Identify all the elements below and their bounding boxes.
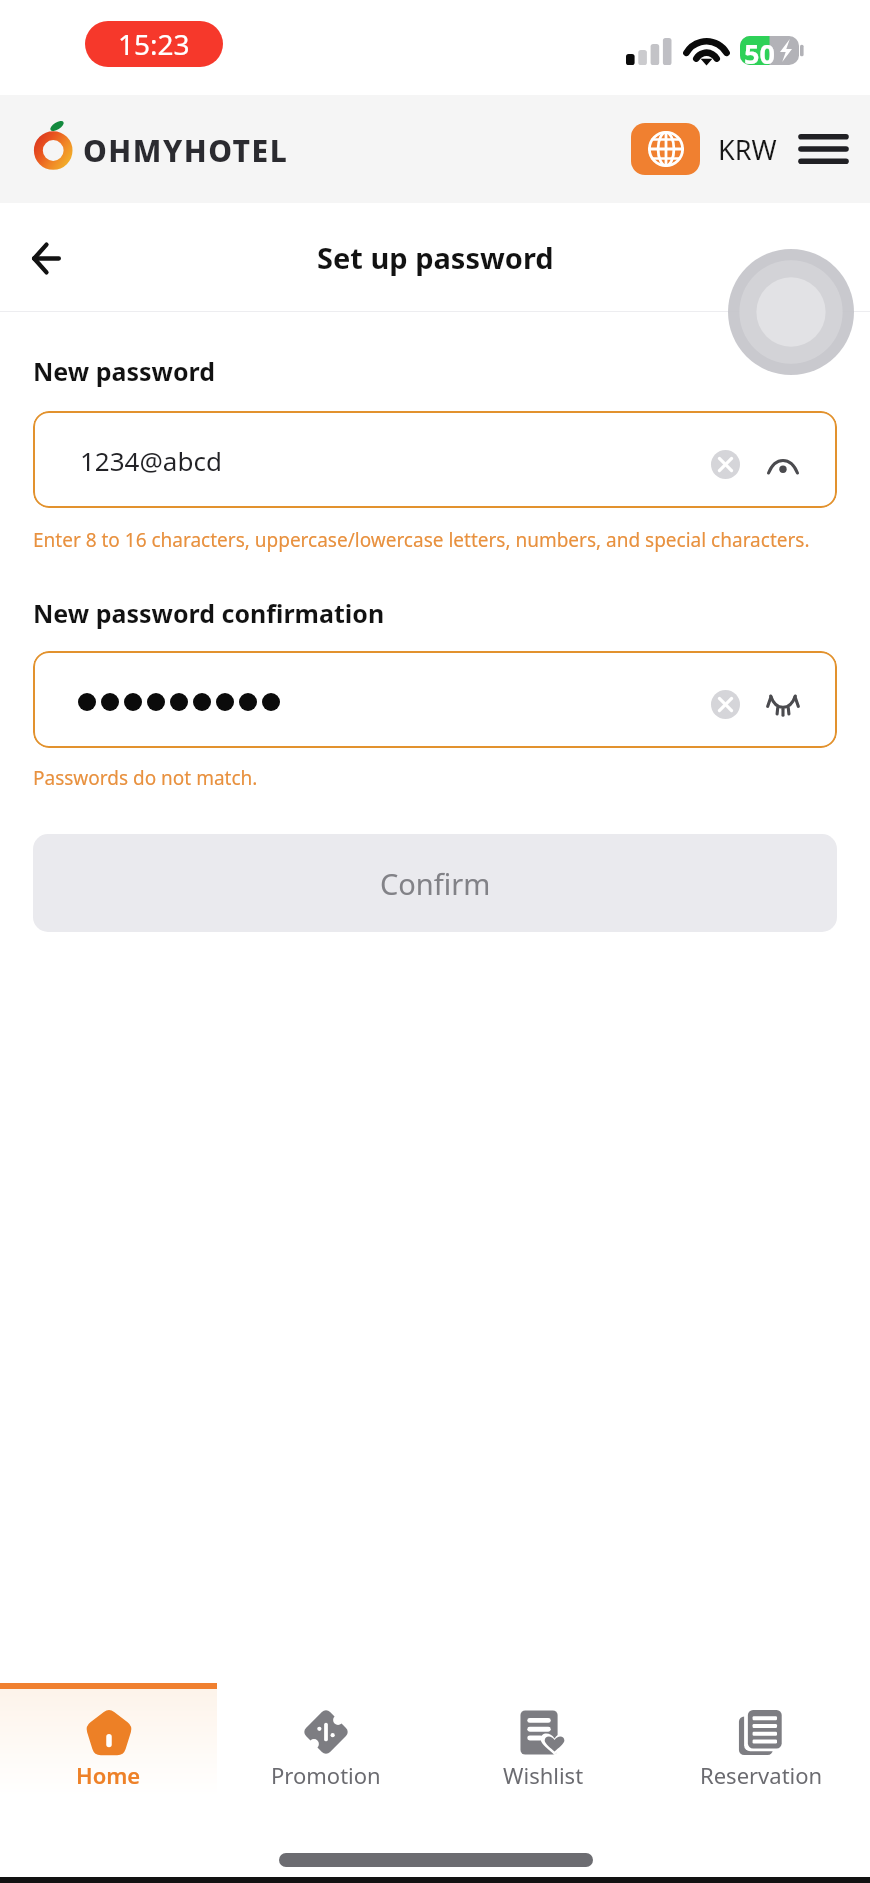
button[interactable]: Clear text xyxy=(699,438,751,490)
button[interactable]: Wishlist xyxy=(434,1683,652,1797)
button[interactable]: Clear text xyxy=(699,678,751,730)
button[interactable]: Reservation xyxy=(652,1683,870,1797)
button[interactable]: Change currency xyxy=(631,123,700,175)
button[interactable]: Toggle password visibility xyxy=(757,438,809,490)
staticText: Set up password xyxy=(317,238,554,277)
button[interactable]: Promotion xyxy=(217,1683,434,1797)
button[interactable]: KRW xyxy=(710,120,785,178)
button[interactable]: 1234@abcd xyxy=(33,411,837,508)
staticText: OHMYHOTEL xyxy=(83,130,289,171)
staticText: Home xyxy=(76,1760,141,1790)
staticText: 15:23 xyxy=(118,25,190,63)
button[interactable]: Clear text xyxy=(33,651,837,748)
staticText: Reservation xyxy=(700,1760,823,1790)
staticText: KRW xyxy=(718,131,777,168)
staticText: New password confirmation xyxy=(33,596,385,630)
staticText: 50 xyxy=(744,35,775,64)
button[interactable]: Confirm xyxy=(33,834,837,932)
button[interactable]: Menu xyxy=(797,123,849,175)
staticText: Wishlist xyxy=(503,1760,584,1790)
staticText: Enter 8 to 16 characters, uppercase/lowe… xyxy=(33,527,810,553)
staticText: Confirm xyxy=(380,864,491,903)
button[interactable]: Back xyxy=(18,230,74,286)
staticText: New password xyxy=(33,354,216,388)
staticText: Promotion xyxy=(271,1760,381,1790)
staticText: Passwords do not match. xyxy=(33,765,258,791)
button[interactable]: Home xyxy=(0,1683,217,1797)
staticText: 1234@abcd xyxy=(80,443,222,478)
button[interactable]: Toggle password visibility xyxy=(757,678,809,730)
